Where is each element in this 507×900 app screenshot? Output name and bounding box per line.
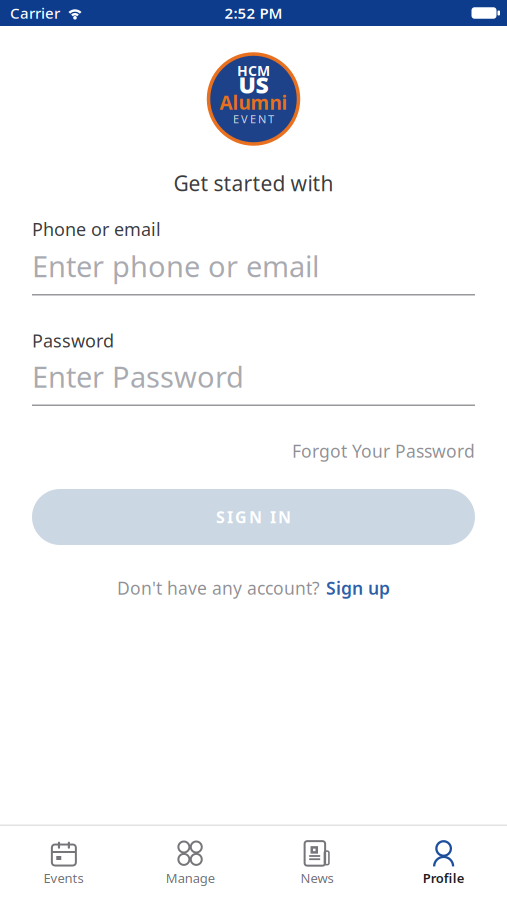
- staticText: Sign up: [326, 576, 390, 600]
- staticText: Phone or email: [32, 217, 161, 241]
- staticText: Carrier: [10, 3, 60, 23]
- staticText: Get started with: [173, 169, 333, 197]
- button[interactable]: Sign up: [326, 576, 390, 600]
- staticText: Alumni: [219, 90, 287, 115]
- staticText: E V E N T: [233, 111, 274, 126]
- staticText: Forgot Your Password: [292, 439, 475, 463]
- button[interactable]: S I G N I N: [0, 489, 507, 545]
- button[interactable]: Forgot Your Password: [292, 439, 475, 463]
- staticText: 2:52 PM: [224, 3, 282, 23]
- button[interactable]: Enter phone or email: [0, 251, 507, 295]
- staticText: HCM: [237, 61, 270, 80]
- staticText: Enter Password: [32, 357, 244, 396]
- staticText: Password: [32, 328, 114, 353]
- button[interactable]: Enter Password: [0, 361, 507, 406]
- button[interactable]: Profile: [380, 841, 507, 884]
- staticText: Profile: [423, 869, 465, 887]
- staticText: News: [300, 869, 333, 887]
- staticText: US: [238, 69, 268, 100]
- staticText: Events: [43, 869, 83, 887]
- staticText: S I G N I N: [216, 506, 291, 528]
- staticText: Don't have any account?: [117, 576, 320, 600]
- button[interactable]: Manage: [127, 841, 254, 884]
- button[interactable]: Events: [0, 841, 127, 884]
- staticText: Enter phone or email: [32, 246, 319, 286]
- button[interactable]: News: [253, 841, 380, 884]
- staticText: Manage: [166, 869, 215, 887]
